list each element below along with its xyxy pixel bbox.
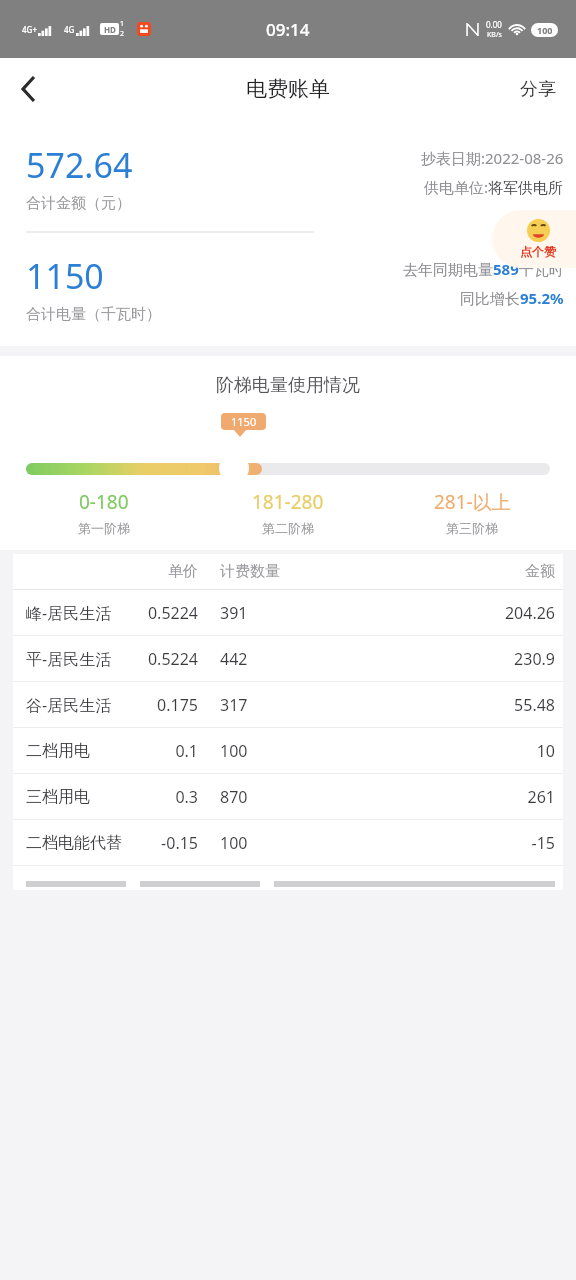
staticText: 分享 [520, 78, 556, 101]
staticText: 0.3 [126, 786, 198, 808]
staticText: 电费账单 [246, 76, 330, 102]
staticText: 0.5224 [126, 602, 198, 624]
staticText: 391 [220, 602, 300, 624]
staticText: 4G+ [22, 24, 37, 35]
staticText: 第三阶梯 [446, 520, 498, 536]
staticText: 第二阶梯 [262, 520, 314, 536]
staticText: 0.00 [486, 19, 502, 30]
staticText: 100 [220, 832, 300, 854]
button[interactable]: 三档用电 [13, 774, 563, 819]
staticText: 2 [120, 29, 125, 39]
staticText: 1 [120, 19, 125, 29]
button[interactable]: Back [0, 61, 56, 117]
staticText: 4G [64, 24, 75, 35]
staticText: -15 [300, 832, 555, 854]
staticText: 870 [220, 786, 300, 808]
staticText: 10 [300, 740, 555, 762]
button[interactable]: 二档电能代替 [13, 820, 563, 865]
staticText: 金额 [300, 562, 555, 581]
staticText: 1150 [26, 253, 104, 299]
staticText: 281-以上 [434, 489, 511, 515]
button[interactable]: 用电量滑块 [219, 453, 249, 483]
staticText: 261 [300, 786, 555, 808]
staticText: 合计电量（千瓦时） [26, 305, 161, 324]
staticText: 442 [220, 648, 300, 670]
staticText: 平-居民生活 [26, 648, 126, 670]
staticText: 单价 [126, 562, 198, 581]
staticText: 二档用电 [26, 741, 126, 761]
staticText: 点个赞 [520, 244, 556, 259]
staticText: 计费数量 [220, 562, 300, 581]
button[interactable]: 峰-居民生活 [13, 590, 563, 635]
staticText: 0.5224 [126, 648, 198, 670]
staticText: 100 [537, 24, 553, 36]
staticText: 合计金额（元） [26, 194, 131, 213]
staticText: 0-180 [79, 489, 129, 515]
staticText: 峰-居民生活 [26, 602, 126, 624]
staticText: HD [104, 24, 116, 35]
staticText: 阶梯电量使用情况 [0, 374, 576, 397]
staticText: 204.26 [300, 602, 555, 624]
staticText: KB/s [487, 30, 502, 40]
staticText: 抄表日期:2022-08-26 [421, 148, 564, 168]
staticText: 第一阶梯 [78, 520, 130, 536]
button[interactable]: 谷-居民生活 [13, 682, 563, 727]
staticText: 去年同期电量589千瓦时 [403, 259, 564, 279]
staticText: 同比增长95.2% [460, 288, 564, 308]
staticText: 三档用电 [26, 787, 126, 807]
staticText: 0.175 [126, 694, 198, 716]
button[interactable]: 二档用电 [13, 728, 563, 773]
staticText: 181-280 [252, 489, 324, 515]
staticText: 谷-居民生活 [26, 694, 126, 716]
staticText: 317 [220, 694, 300, 716]
staticText: 09:14 [266, 18, 310, 41]
button[interactable]: 点个赞 [492, 210, 576, 268]
staticText: 55.48 [300, 694, 555, 716]
button[interactable]: 分享 [500, 64, 576, 115]
staticText: 1150 [231, 414, 257, 429]
button[interactable]: 平-居民生活 [13, 636, 563, 681]
staticText: 二档电能代替 [26, 833, 126, 853]
staticText: 230.9 [300, 648, 555, 670]
staticText: 572.64 [26, 142, 133, 188]
staticText: 0.1 [126, 740, 198, 762]
staticText: 供电单位:将军供电所 [424, 177, 564, 197]
staticText: -0.15 [126, 832, 198, 854]
staticText: 100 [220, 740, 300, 762]
